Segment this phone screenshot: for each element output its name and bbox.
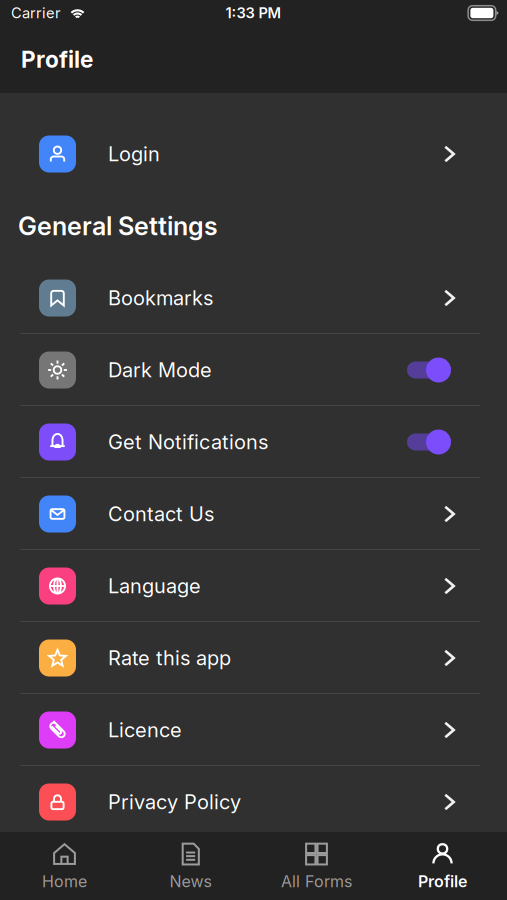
staticText: Language xyxy=(108,574,201,598)
staticText: Login xyxy=(108,142,160,166)
button[interactable]: Licence xyxy=(0,694,507,766)
button[interactable]: Language xyxy=(0,550,507,622)
staticText: Get Notifications xyxy=(108,430,268,454)
staticText: News xyxy=(169,872,211,891)
button[interactable]: Rate this app xyxy=(0,622,507,694)
staticText: Rate this app xyxy=(108,646,231,670)
staticText: Contact Us xyxy=(108,502,214,526)
button[interactable]: All Forms xyxy=(253,832,379,900)
staticText: Profile xyxy=(418,872,467,891)
staticText: All Forms xyxy=(281,872,352,891)
staticText: Home xyxy=(42,872,87,891)
staticText: Privacy Policy xyxy=(108,790,241,814)
button[interactable]: News xyxy=(127,832,253,900)
staticText: Bookmarks xyxy=(108,286,213,310)
button[interactable]: Privacy Policy xyxy=(0,766,507,838)
button[interactable]: Get Notifications xyxy=(0,406,507,478)
staticText: Profile xyxy=(21,46,93,73)
staticText: Licence xyxy=(108,718,182,742)
staticText: 1:33 PM xyxy=(225,4,281,22)
button[interactable]: Dark Mode xyxy=(0,334,507,406)
staticText: Dark Mode xyxy=(108,358,212,382)
staticText: Carrier xyxy=(11,4,61,22)
button[interactable]: Contact Us xyxy=(0,478,507,550)
button[interactable]: Profile xyxy=(379,832,505,900)
staticText: General Settings xyxy=(18,211,218,241)
button[interactable]: Login xyxy=(0,118,507,190)
button[interactable]: Home xyxy=(1,832,127,900)
button[interactable]: Bookmarks xyxy=(0,262,507,334)
